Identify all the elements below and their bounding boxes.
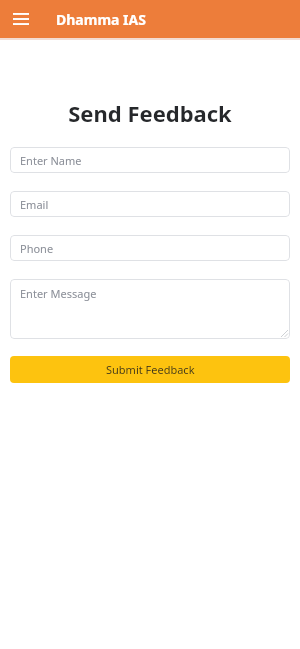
staticText: Enter Message (20, 286, 97, 301)
button[interactable]: Email (10, 191, 290, 217)
staticText: Send Feedback (0, 98, 300, 128)
staticText: Submit Feedback (106, 362, 195, 377)
staticText: Phone (20, 241, 54, 256)
staticText: Enter Name (20, 153, 82, 168)
button[interactable]: Open navigation menu (4, 2, 38, 36)
staticText: Email (20, 197, 49, 212)
button[interactable]: Enter Name (10, 147, 290, 173)
button[interactable]: Enter Message (10, 279, 290, 339)
staticText: Dhamma IAS (56, 10, 146, 29)
button[interactable]: Submit Feedback (10, 356, 290, 383)
button[interactable]: Phone (10, 235, 290, 261)
